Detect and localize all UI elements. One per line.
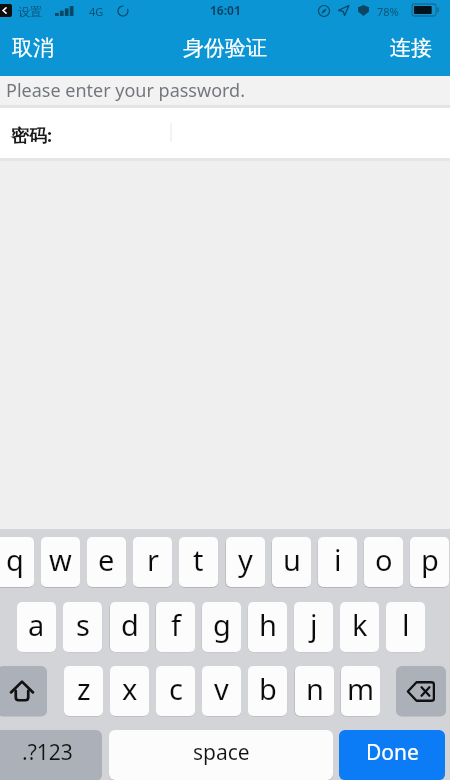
staticText: t <box>193 540 204 579</box>
staticText: Please enter your password. <box>6 78 246 103</box>
staticText: l <box>402 605 410 644</box>
button[interactable]: r <box>133 537 172 587</box>
staticText: s <box>76 605 90 644</box>
button[interactable]: Backspace <box>396 666 446 716</box>
button[interactable]: y <box>226 537 265 587</box>
staticText: 连接 <box>390 35 432 61</box>
button[interactable]: w <box>41 537 80 587</box>
staticText: Done <box>366 738 419 767</box>
button[interactable]: 取消 <box>0 25 68 72</box>
button[interactable]: b <box>248 666 287 716</box>
staticText: x <box>122 669 138 708</box>
staticText: 78% <box>377 4 399 19</box>
staticText: e <box>98 540 115 579</box>
button[interactable]: v <box>202 666 241 716</box>
staticText: a <box>28 605 45 644</box>
staticText: 取消 <box>12 35 54 61</box>
staticText: 设置 <box>18 4 42 19</box>
staticText: b <box>259 669 277 708</box>
staticText: m <box>347 669 375 708</box>
staticText: d <box>121 605 139 644</box>
button[interactable]: o <box>364 537 403 587</box>
button[interactable]: a <box>17 602 56 652</box>
button[interactable]: h <box>248 602 287 652</box>
staticText: 密码: <box>11 123 53 148</box>
button[interactable]: p <box>410 537 449 587</box>
staticText: n <box>306 669 324 708</box>
button[interactable]: n <box>295 666 334 716</box>
staticText: 16:01 <box>210 2 241 18</box>
button[interactable]: m <box>341 666 380 716</box>
staticText: c <box>169 669 183 708</box>
button[interactable]: c <box>156 666 195 716</box>
staticText: o <box>375 540 393 579</box>
button[interactable]: .?123 <box>0 730 102 780</box>
button[interactable]: i <box>318 537 357 587</box>
staticText: 身份验证 <box>183 35 267 61</box>
button[interactable]: Shift <box>0 666 47 716</box>
staticText: h <box>259 605 277 644</box>
staticText: g <box>213 605 231 644</box>
button[interactable]: z <box>64 666 103 716</box>
staticText: w <box>49 540 72 579</box>
button[interactable]: g <box>202 602 241 652</box>
button[interactable]: t <box>179 537 218 587</box>
staticText: .?123 <box>22 738 73 767</box>
button[interactable]: e <box>87 537 126 587</box>
staticText: j <box>310 605 318 644</box>
button[interactable]: f <box>156 602 195 652</box>
button[interactable]: k <box>340 602 379 652</box>
staticText: 4G <box>89 4 104 19</box>
button[interactable]: q <box>0 537 34 587</box>
staticText: f <box>171 605 181 644</box>
button[interactable]: s <box>63 602 102 652</box>
button[interactable]: x <box>110 666 149 716</box>
button[interactable]: space <box>109 730 333 780</box>
button[interactable]: u <box>272 537 311 587</box>
staticText: p <box>421 540 439 579</box>
staticText: i <box>334 540 342 579</box>
button[interactable]: 连接 <box>376 25 450 72</box>
button[interactable]: j <box>294 602 333 652</box>
staticText: u <box>283 540 301 579</box>
staticText: v <box>214 669 229 708</box>
staticText: k <box>352 605 368 644</box>
button[interactable]: l <box>386 602 425 652</box>
staticText: r <box>147 540 159 579</box>
staticText: q <box>6 540 24 579</box>
button[interactable]: Done <box>339 730 445 780</box>
staticText: y <box>238 540 253 579</box>
staticText: z <box>77 669 91 708</box>
staticText: space <box>193 738 250 767</box>
button[interactable]: Back <box>0 4 12 17</box>
button[interactable]: d <box>110 602 149 652</box>
